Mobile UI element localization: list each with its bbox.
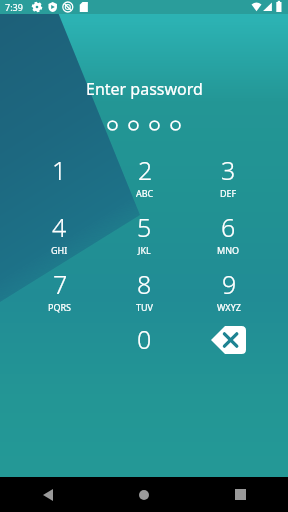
staticText: 7 xyxy=(53,267,68,301)
button[interactable]: 6 xyxy=(186,208,271,265)
staticText: WXYZ xyxy=(217,301,241,313)
staticText: ABC xyxy=(136,187,154,199)
button[interactable]: Back xyxy=(0,477,96,512)
staticText: TUV xyxy=(136,301,153,313)
button[interactable]: Home xyxy=(96,477,192,512)
staticText: PQRS xyxy=(48,301,72,313)
button[interactable]: 4 xyxy=(17,208,102,265)
button[interactable]: 2 xyxy=(102,151,187,208)
button[interactable]: 8 xyxy=(102,265,187,322)
button[interactable]: Backspace xyxy=(186,318,271,375)
staticText: Enter password xyxy=(86,78,203,100)
staticText: MNO xyxy=(217,244,240,256)
staticText: 9 xyxy=(222,267,237,301)
staticText: 6 xyxy=(221,210,236,244)
button[interactable]: 3 xyxy=(186,151,271,208)
staticText: 0 xyxy=(137,322,152,356)
button[interactable]: 0 xyxy=(102,320,187,377)
button[interactable]: 5 xyxy=(102,208,187,265)
button[interactable]: 9 xyxy=(186,265,271,322)
staticText: 8 xyxy=(137,267,152,301)
staticText: DEF xyxy=(220,187,237,199)
staticText: JKL xyxy=(138,244,151,256)
staticText: 4 xyxy=(52,210,67,244)
button[interactable]: 1 xyxy=(17,151,102,208)
staticText: 2 xyxy=(138,153,153,187)
button[interactable]: Recent apps xyxy=(192,477,288,512)
staticText: GHI xyxy=(51,244,68,256)
staticText: 5 xyxy=(137,210,152,244)
button[interactable]: 7 xyxy=(17,265,102,322)
staticText: 1 xyxy=(52,153,67,187)
staticText: 3 xyxy=(221,153,236,187)
staticText: 7:39 xyxy=(5,1,23,13)
